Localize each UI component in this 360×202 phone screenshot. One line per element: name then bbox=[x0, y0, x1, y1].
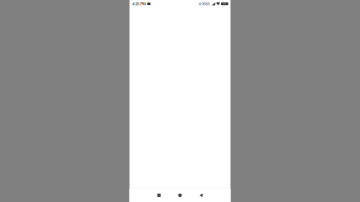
staticText: 4:26 PM bbox=[132, 1, 146, 6]
staticText: 4.06K/s bbox=[198, 1, 210, 6]
button[interactable]: Recent apps bbox=[148, 189, 169, 202]
button[interactable]: Home bbox=[169, 189, 190, 202]
button[interactable]: Back bbox=[190, 189, 211, 202]
